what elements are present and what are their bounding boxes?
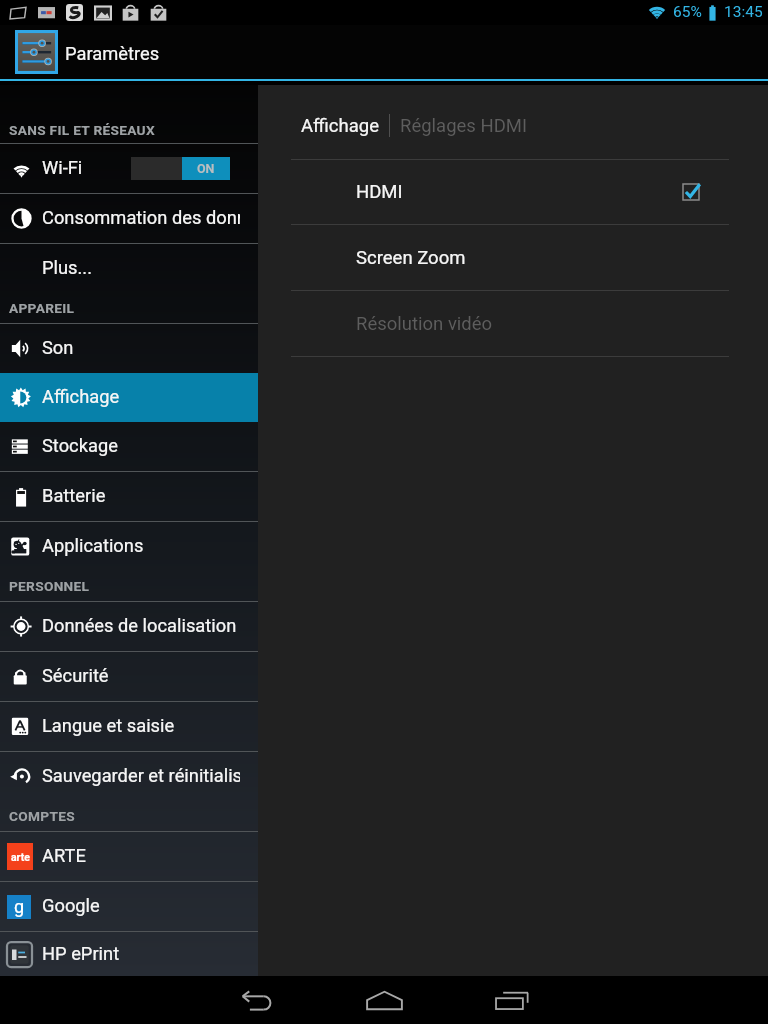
staticText: Affichage bbox=[301, 115, 379, 137]
staticText: Sécurité bbox=[42, 665, 109, 686]
staticText: Réglages HDMI bbox=[400, 115, 528, 137]
staticText: Paramètres bbox=[65, 43, 160, 64]
button[interactable]: g bbox=[0, 882, 258, 931]
button[interactable]: arte bbox=[0, 832, 258, 881]
staticText: Sauvegarder et réinitialiser bbox=[42, 765, 240, 786]
button[interactable]: Batterie bbox=[0, 472, 258, 521]
staticText: Affichage bbox=[42, 386, 120, 407]
staticText: COMPTES bbox=[9, 808, 75, 824]
staticText: ON bbox=[197, 161, 215, 176]
button[interactable]: Langue et saisie bbox=[0, 702, 258, 751]
button[interactable]: Consommation des données bbox=[0, 194, 258, 243]
staticText: Langue et saisie bbox=[42, 715, 175, 736]
button[interactable]: Sécurité bbox=[0, 652, 258, 701]
staticText: Son bbox=[42, 337, 74, 358]
button[interactable]: Sauvegarder et réinitialiser bbox=[0, 752, 258, 801]
staticText: g bbox=[14, 896, 25, 917]
staticText: Wi-Fi bbox=[42, 157, 83, 178]
staticText: PERSONNEL bbox=[9, 578, 90, 594]
button[interactable]: Applications bbox=[0, 522, 258, 571]
button[interactable]: Back bbox=[192, 976, 320, 1024]
button[interactable]: Stockage bbox=[0, 422, 258, 471]
staticText: Stockage bbox=[42, 435, 118, 456]
button[interactable]: HDMI bbox=[291, 160, 729, 224]
button[interactable]: Screen Zoom bbox=[291, 225, 729, 290]
staticText: Screen Zoom bbox=[356, 247, 466, 269]
button[interactable]: Données de localisation bbox=[0, 602, 258, 651]
staticText: APPAREIL bbox=[9, 300, 75, 316]
staticText: Batterie bbox=[42, 485, 106, 506]
staticText: Plus... bbox=[42, 257, 92, 278]
staticText: HP ePrint bbox=[42, 943, 120, 964]
button[interactable]: HP ePrint bbox=[0, 932, 258, 976]
button[interactable]: Affichage bbox=[0, 373, 258, 422]
staticText: Consommation des données bbox=[42, 207, 240, 228]
staticText: HDMI bbox=[356, 181, 403, 203]
button[interactable]: Home bbox=[320, 976, 448, 1024]
staticText: 13:45 bbox=[724, 3, 763, 21]
staticText: Applications bbox=[42, 535, 144, 556]
staticText: arte bbox=[11, 851, 30, 863]
button[interactable]: Recent apps bbox=[448, 976, 576, 1024]
button[interactable]: ON bbox=[131, 157, 230, 180]
staticText: Google bbox=[42, 895, 100, 916]
button[interactable]: Wi-Fi bbox=[0, 144, 258, 193]
button[interactable]: Plus... bbox=[0, 244, 258, 293]
staticText: 65% bbox=[673, 3, 702, 21]
staticText: SANS FIL ET RÉSEAUX bbox=[9, 122, 155, 138]
staticText: ARTE bbox=[42, 845, 86, 866]
staticText: Données de localisation bbox=[42, 615, 237, 636]
button[interactable]: Son bbox=[0, 324, 258, 373]
staticText: Résolution vidéo bbox=[356, 313, 493, 335]
